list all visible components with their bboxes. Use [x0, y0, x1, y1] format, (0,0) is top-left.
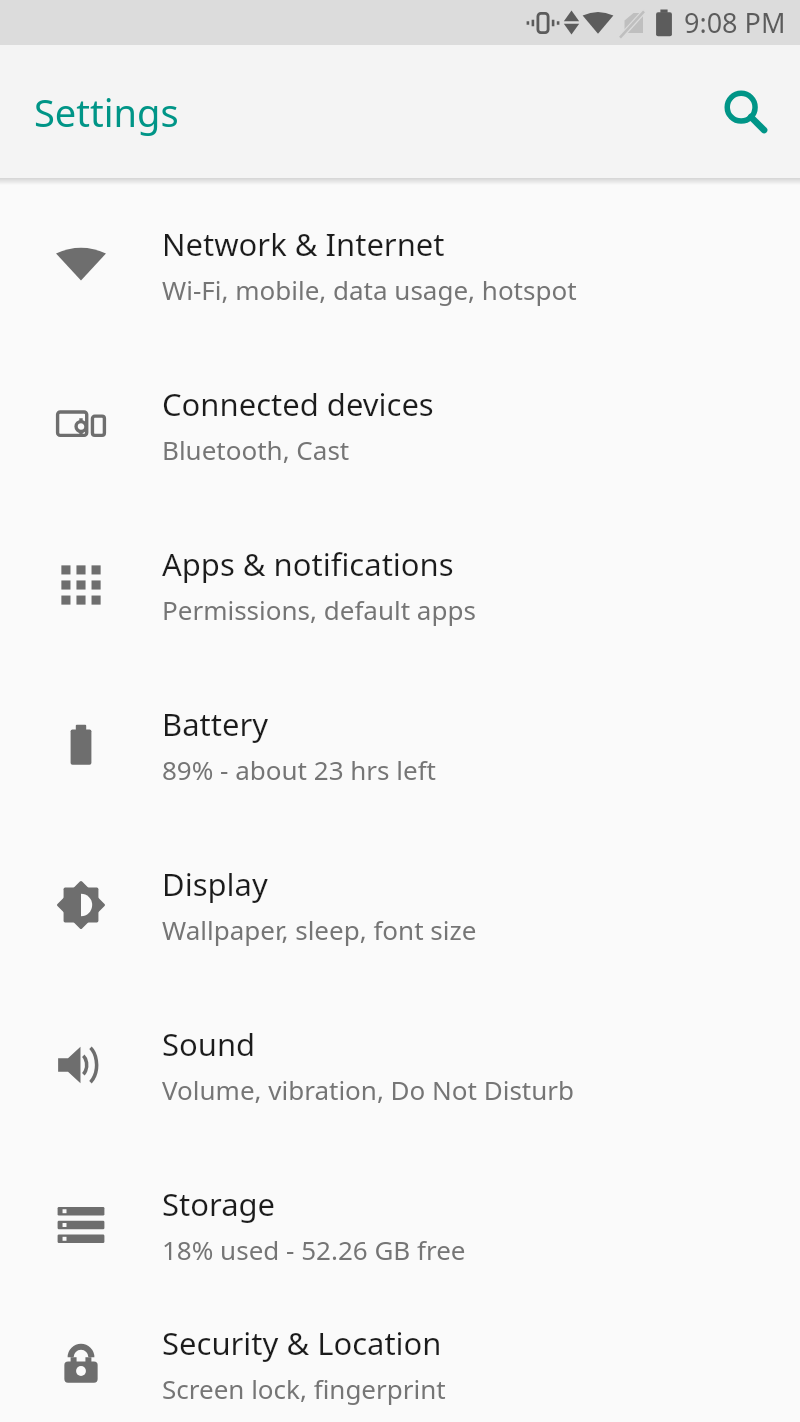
- button[interactable]: Storage: [0, 1145, 800, 1305]
- button[interactable]: Battery: [0, 665, 800, 825]
- staticText: 89% - about 23 hrs left: [162, 752, 436, 787]
- staticText: 9:08 PM: [684, 4, 786, 41]
- staticText: Permissions, default apps: [162, 592, 476, 627]
- staticText: Sound: [162, 1023, 256, 1065]
- staticText: Display: [162, 863, 268, 905]
- staticText: Connected devices: [162, 383, 434, 425]
- staticText: 18% used - 52.26 GB free: [162, 1232, 466, 1267]
- staticText: Volume, vibration, Do Not Disturb: [162, 1072, 575, 1107]
- button[interactable]: Display: [0, 825, 800, 985]
- button[interactable]: Connected devices: [0, 345, 800, 505]
- staticText: Network & Internet: [162, 223, 445, 265]
- staticText: Wi-Fi, mobile, data usage, hotspot: [162, 272, 577, 307]
- staticText: Battery: [162, 703, 269, 745]
- button[interactable]: Apps & notifications: [0, 505, 800, 665]
- staticText: Storage: [162, 1183, 276, 1225]
- staticText: Bluetooth, Cast: [162, 432, 350, 467]
- button[interactable]: Search: [716, 83, 774, 141]
- staticText: Wallpaper, sleep, font size: [162, 912, 477, 947]
- button[interactable]: Security & Location: [0, 1305, 800, 1422]
- staticText: Apps & notifications: [162, 543, 454, 585]
- staticText: Settings: [34, 86, 179, 138]
- button[interactable]: Network & Internet: [0, 185, 800, 345]
- staticText: Screen lock, fingerprint: [162, 1371, 446, 1406]
- button[interactable]: Sound: [0, 985, 800, 1145]
- staticText: Security & Location: [162, 1322, 442, 1364]
